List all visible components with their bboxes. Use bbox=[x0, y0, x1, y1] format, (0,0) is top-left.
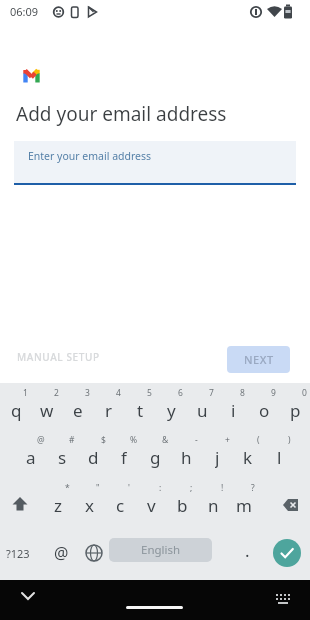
button[interactable]: MANUAL SETUP bbox=[17, 350, 100, 364]
button[interactable] bbox=[6, 491, 34, 519]
button[interactable]: NEXT bbox=[227, 346, 290, 373]
button[interactable] bbox=[14, 582, 42, 610]
staticText: 6 bbox=[178, 387, 183, 397]
button[interactable]: w bbox=[32, 399, 62, 421]
staticText: Add your email address bbox=[16, 101, 227, 127]
staticText: ( bbox=[257, 434, 260, 444]
button[interactable]: Enter your email address bbox=[14, 141, 296, 185]
staticText: f bbox=[121, 446, 127, 468]
staticText: j bbox=[215, 446, 220, 468]
button[interactable]: z bbox=[43, 494, 73, 516]
button[interactable]: p bbox=[280, 399, 310, 421]
staticText: r bbox=[105, 399, 113, 421]
staticText: ; bbox=[190, 482, 193, 492]
button[interactable]: h bbox=[171, 446, 201, 468]
staticText: q bbox=[11, 399, 22, 421]
button[interactable]: k bbox=[233, 446, 263, 468]
staticText: b bbox=[177, 494, 188, 516]
staticText: u bbox=[197, 399, 208, 421]
staticText: 7 bbox=[209, 387, 214, 397]
staticText: 5 bbox=[147, 387, 152, 397]
staticText: n bbox=[208, 494, 219, 516]
button[interactable]: o bbox=[249, 399, 279, 421]
staticText: 06:09 bbox=[10, 4, 39, 19]
staticText: l bbox=[277, 446, 282, 468]
button[interactable]: v bbox=[136, 494, 166, 516]
staticText: i bbox=[231, 399, 236, 421]
staticText: g bbox=[150, 446, 161, 468]
button[interactable]: . bbox=[232, 539, 262, 561]
staticText: v bbox=[147, 494, 156, 516]
staticText: p bbox=[290, 399, 301, 421]
button[interactable]: g bbox=[140, 446, 170, 468]
staticText: o bbox=[259, 399, 270, 421]
button[interactable]: c bbox=[105, 494, 135, 516]
button[interactable]: f bbox=[109, 446, 139, 468]
staticText: m bbox=[236, 494, 252, 516]
button[interactable]: y bbox=[156, 399, 186, 421]
button[interactable]: r bbox=[94, 399, 124, 421]
staticText: a bbox=[26, 446, 36, 468]
button[interactable]: @ bbox=[46, 542, 76, 564]
button[interactable]: English bbox=[109, 538, 212, 562]
button[interactable] bbox=[80, 539, 108, 567]
staticText: t bbox=[137, 399, 144, 421]
staticText: k bbox=[243, 446, 253, 468]
staticText: 8 bbox=[240, 387, 245, 397]
button[interactable]: l bbox=[264, 446, 294, 468]
staticText: d bbox=[88, 446, 99, 468]
button[interactable]: x bbox=[74, 494, 104, 516]
button[interactable]: t bbox=[125, 399, 155, 421]
staticText: ? bbox=[251, 482, 255, 492]
staticText: x bbox=[85, 494, 94, 516]
button[interactable]: ?123 bbox=[0, 542, 36, 564]
staticText: % bbox=[130, 434, 138, 444]
button[interactable]: i bbox=[218, 399, 248, 421]
staticText: NEXT bbox=[244, 352, 274, 367]
staticText: @ bbox=[54, 542, 69, 564]
staticText: ) bbox=[288, 434, 291, 444]
staticText: + bbox=[225, 434, 230, 444]
button[interactable] bbox=[274, 491, 304, 519]
button[interactable] bbox=[269, 585, 297, 613]
staticText: 4 bbox=[116, 387, 121, 397]
button[interactable] bbox=[273, 539, 301, 567]
staticText: 2 bbox=[54, 387, 59, 397]
button[interactable]: e bbox=[63, 399, 93, 421]
staticText: - bbox=[195, 434, 198, 444]
staticText: 3 bbox=[85, 387, 90, 397]
staticText: c bbox=[116, 494, 125, 516]
staticText: s bbox=[58, 446, 67, 468]
button[interactable]: a bbox=[16, 446, 46, 468]
button[interactable]: q bbox=[1, 399, 31, 421]
staticText: * bbox=[65, 482, 70, 492]
button[interactable]: b bbox=[167, 494, 197, 516]
staticText: . bbox=[245, 539, 250, 561]
staticText: ?123 bbox=[6, 546, 30, 561]
staticText: 9 bbox=[271, 387, 276, 397]
staticText: 0 bbox=[302, 387, 307, 397]
button[interactable]: n bbox=[198, 494, 228, 516]
staticText: ' bbox=[128, 482, 130, 492]
button[interactable]: m bbox=[229, 494, 259, 516]
staticText: & bbox=[162, 434, 169, 444]
button[interactable]: u bbox=[187, 399, 217, 421]
staticText: e bbox=[73, 399, 83, 421]
staticText: z bbox=[54, 494, 62, 516]
button[interactable]: d bbox=[78, 446, 108, 468]
button[interactable]: j bbox=[202, 446, 232, 468]
staticText: $ bbox=[101, 434, 106, 444]
staticText: 1 bbox=[23, 387, 28, 397]
staticText: @ bbox=[37, 434, 45, 444]
staticText: h bbox=[181, 446, 192, 468]
staticText: y bbox=[167, 399, 176, 421]
button[interactable]: s bbox=[47, 446, 77, 468]
staticText: ! bbox=[221, 482, 224, 492]
staticText: Enter your email address bbox=[28, 149, 152, 163]
staticText: : bbox=[159, 482, 162, 492]
staticText: # bbox=[69, 434, 75, 444]
staticText: w bbox=[40, 399, 54, 421]
staticText: English bbox=[141, 542, 181, 558]
staticText: " bbox=[96, 482, 100, 492]
